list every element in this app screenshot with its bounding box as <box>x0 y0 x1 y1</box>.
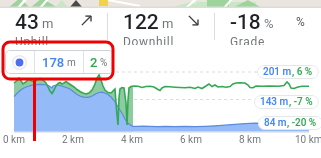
button[interactable]: 84 m <box>264 116 317 130</box>
staticText: % <box>296 15 305 26</box>
staticText: 2 <box>90 55 98 70</box>
staticText: % <box>100 57 108 69</box>
staticText: % <box>264 16 274 31</box>
button[interactable]: 201 m <box>263 65 313 79</box>
staticText: Downhill <box>123 35 175 45</box>
staticText: 4 km <box>121 134 143 146</box>
button[interactable]: 122 <box>108 8 214 45</box>
staticText: 2 km <box>62 134 84 146</box>
staticText: 0 km <box>3 134 25 146</box>
staticText: m <box>67 57 76 69</box>
staticText: m <box>162 16 174 31</box>
button[interactable]: 178 <box>5 50 114 74</box>
staticText: Grade <box>230 35 265 45</box>
staticText: , -20 % <box>287 117 317 129</box>
button[interactable]: 143 m <box>260 95 313 109</box>
staticText: 6 km <box>180 134 202 146</box>
staticText: 122 <box>123 10 159 35</box>
staticText: 178 <box>42 55 65 70</box>
staticText: , -7 % <box>289 96 313 108</box>
staticText: 43 <box>15 10 39 35</box>
staticText: 143 m <box>260 96 289 108</box>
staticText: -18 <box>230 10 261 35</box>
staticText: 84 m <box>264 117 287 129</box>
button[interactable]: 43 <box>0 8 107 45</box>
staticText: , 6 % <box>292 66 313 78</box>
button[interactable]: -18 <box>215 8 321 45</box>
staticText: 10 km <box>295 134 321 146</box>
staticText: m <box>42 16 54 31</box>
staticText: 8 km <box>239 134 261 146</box>
staticText: Uphill <box>15 35 49 45</box>
staticText: 201 m <box>263 66 292 78</box>
